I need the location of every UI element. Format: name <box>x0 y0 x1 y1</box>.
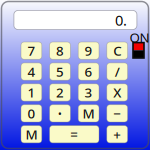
staticText: C <box>113 42 121 59</box>
button[interactable]: / <box>107 63 128 80</box>
staticText: 7 <box>27 42 35 59</box>
button[interactable]: · <box>50 105 70 122</box>
button[interactable]: 3 <box>78 84 99 101</box>
staticText: ON <box>129 28 149 46</box>
staticText: 4 <box>27 63 35 80</box>
button[interactable]: 7 <box>21 42 42 59</box>
button[interactable]: Power switch <box>133 43 144 58</box>
staticText: + <box>113 125 121 143</box>
button[interactable]: 4 <box>21 63 42 80</box>
button[interactable]: + <box>107 126 128 143</box>
button[interactable]: X <box>107 84 128 101</box>
button[interactable]: 0 <box>21 105 42 122</box>
staticText: M <box>83 104 95 122</box>
button[interactable]: 1 <box>21 84 42 101</box>
staticText: M <box>25 125 37 143</box>
button[interactable]: 6 <box>78 63 99 80</box>
staticText: / <box>115 63 120 80</box>
staticText: 2 <box>56 84 64 101</box>
staticText: = <box>70 125 78 143</box>
staticText: − <box>113 104 121 122</box>
button[interactable]: − <box>107 105 128 122</box>
button[interactable]: 8 <box>50 42 70 59</box>
staticText: 9 <box>85 42 93 59</box>
button[interactable]: 9 <box>78 42 99 59</box>
staticText: 0 <box>27 104 35 122</box>
staticText: · <box>57 102 62 125</box>
staticText: 6 <box>85 63 93 80</box>
button[interactable]: 5 <box>50 63 70 80</box>
button[interactable]: M <box>21 126 42 143</box>
staticText: X <box>113 84 121 101</box>
staticText: 0. <box>115 10 127 30</box>
staticText: 8 <box>56 42 64 59</box>
button[interactable]: 2 <box>50 84 70 101</box>
staticText: 3 <box>85 84 93 101</box>
button[interactable]: = <box>50 126 99 143</box>
button[interactable]: M <box>78 105 99 122</box>
staticText: 5 <box>56 63 64 80</box>
staticText: 1 <box>27 84 35 101</box>
button[interactable]: C <box>107 42 128 59</box>
